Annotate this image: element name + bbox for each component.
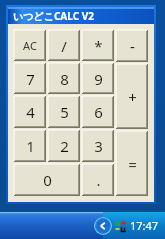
button[interactable]: Language bar [114, 219, 128, 233]
staticText: * [94, 36, 103, 56]
button[interactable]: = [116, 131, 148, 196]
button[interactable]: / [48, 30, 80, 61]
staticText: 2 [60, 136, 69, 156]
button[interactable]: 7 [14, 63, 46, 94]
staticText: 3 [94, 136, 103, 156]
staticText: 17:47 [130, 218, 159, 233]
staticText: 8 [60, 69, 69, 89]
button[interactable]: * [82, 30, 114, 61]
staticText: = [128, 154, 137, 174]
staticText: 6 [94, 102, 103, 122]
staticText: + [128, 87, 137, 107]
staticText: 1 [26, 136, 35, 156]
staticText: 0 [43, 170, 52, 190]
staticText: 9 [94, 69, 103, 89]
staticText: 5 [60, 102, 69, 122]
button[interactable]: 8 [48, 63, 80, 94]
staticText: / [61, 36, 67, 56]
button[interactable]: 9 [82, 63, 114, 94]
button[interactable]: - [116, 30, 148, 62]
button[interactable]: 0 [14, 164, 80, 196]
staticText: AC [23, 38, 37, 53]
staticText: 4 [26, 102, 35, 122]
button[interactable]: + [116, 64, 148, 129]
button[interactable]: 1 [14, 130, 46, 162]
button[interactable]: Show hidden icons [94, 217, 112, 235]
staticText: . [96, 170, 101, 190]
button[interactable]: 3 [82, 130, 114, 162]
button[interactable]: 2 [48, 130, 80, 162]
button[interactable]: 5 [48, 96, 80, 128]
staticText: 7 [26, 69, 35, 89]
button[interactable]: . [82, 164, 114, 196]
button[interactable]: 6 [82, 96, 114, 128]
button[interactable]: 4 [14, 96, 46, 128]
button[interactable]: AC [14, 30, 46, 61]
staticText: いつどこCALC V2 [13, 9, 94, 23]
staticText: - [130, 36, 135, 56]
